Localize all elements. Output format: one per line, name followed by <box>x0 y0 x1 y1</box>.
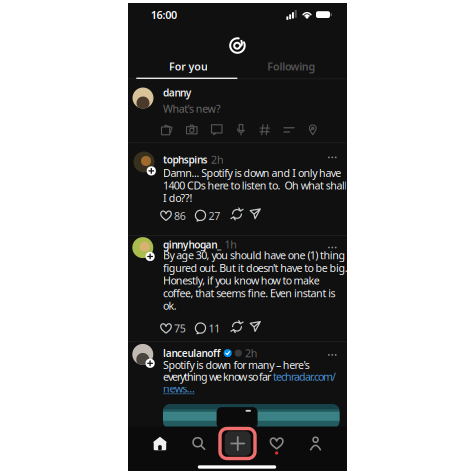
button[interactable]: Add tag <box>260 125 269 135</box>
staticText: 16:00 <box>151 7 177 22</box>
button[interactable]: 75 <box>160 321 186 336</box>
staticText: 75 <box>174 321 186 336</box>
button[interactable]: Attach photos <box>161 125 172 135</box>
staticText: everything we know so far <box>163 370 273 384</box>
button[interactable]: More options <box>328 247 337 248</box>
staticText: tophspins <box>163 153 208 166</box>
button[interactable]: Share <box>250 209 260 219</box>
staticText: 86 <box>174 209 186 223</box>
staticText: Damn... Spotify is down and I only have <box>163 166 341 180</box>
staticText: 2h <box>211 153 224 167</box>
staticText: Spotify is down for many – here's <box>163 358 310 372</box>
staticText: By age 30, you should have one (1) thing <box>163 248 346 262</box>
button[interactable]: Share <box>250 321 260 332</box>
staticText: 1h <box>224 237 237 252</box>
staticText: ginnyhogan_ <box>163 238 221 251</box>
staticText: danny <box>163 86 192 99</box>
staticText: 2h <box>245 346 258 360</box>
button[interactable]: Home <box>140 426 179 460</box>
button[interactable]: Voice <box>236 124 245 135</box>
staticText: news… <box>163 381 195 395</box>
button[interactable]: Camera <box>186 125 197 134</box>
button[interactable]: Follow ginnyhogan_ <box>145 252 155 261</box>
button[interactable]: techradar.com/ <box>273 370 336 384</box>
staticText: techradar.com/ <box>273 370 336 384</box>
button[interactable]: Follow lanceulanoff <box>145 359 155 368</box>
button[interactable]: Search <box>179 426 218 460</box>
button[interactable]: Repost <box>231 209 242 219</box>
button[interactable]: More options <box>328 354 337 356</box>
button[interactable]: New thread <box>218 426 257 460</box>
button[interactable]: danny profile <box>132 87 153 108</box>
button[interactable]: lanceulanoff profile <box>132 344 153 365</box>
staticText: coffee, that seems fine. Even instant is <box>163 286 336 300</box>
button[interactable]: 27 <box>195 209 220 223</box>
staticText: I do??! <box>163 191 192 205</box>
staticText: 11 <box>208 321 220 336</box>
staticText: 1400 CDs here to listen to. Oh what shal… <box>163 178 347 192</box>
staticText: Following <box>267 59 315 73</box>
button[interactable]: Activity <box>257 426 296 460</box>
staticText: lanceulanoff <box>163 346 221 360</box>
staticText: For you <box>169 59 208 73</box>
button[interactable]: Create poll <box>284 125 294 135</box>
button[interactable]: 86 <box>160 209 186 223</box>
staticText: ok. <box>163 299 177 313</box>
button[interactable]: danny <box>163 86 221 116</box>
button[interactable]: For you <box>169 59 208 73</box>
button[interactable]: More options <box>328 156 337 158</box>
button[interactable]: 11 <box>195 321 220 336</box>
button[interactable]: tophspins profile <box>133 151 154 172</box>
button[interactable]: Profile <box>296 426 335 460</box>
staticText: What's new? <box>163 101 221 116</box>
staticText: figured out. But it doesn't have to be b… <box>163 261 348 275</box>
button[interactable]: Add location <box>308 125 317 135</box>
staticText: 27 <box>208 209 220 223</box>
button[interactable]: Repost <box>231 321 242 332</box>
button[interactable]: news… <box>163 381 195 395</box>
button[interactable]: Following <box>267 59 315 73</box>
button[interactable]: Add GIF <box>211 125 222 135</box>
button[interactable]: ginnyhogan_ profile <box>132 237 153 258</box>
button[interactable]: Follow tophspins <box>147 166 156 175</box>
staticText: Honestly, if you know how to make <box>163 273 320 287</box>
